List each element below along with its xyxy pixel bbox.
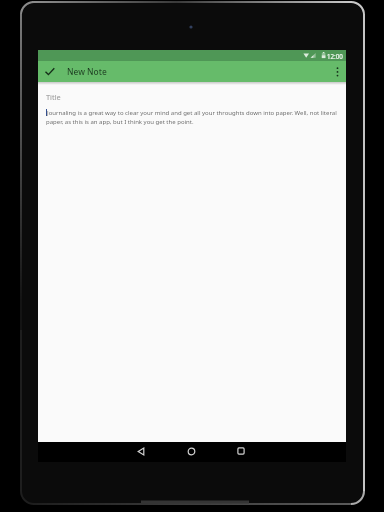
button[interactable] bbox=[227, 441, 255, 461]
button[interactable]: Title bbox=[46, 92, 340, 102]
button[interactable] bbox=[329, 61, 346, 82]
staticText: Journaling is a great way to clear your … bbox=[47, 109, 337, 117]
button[interactable] bbox=[127, 441, 155, 461]
staticText: paper, as this is an app, but I think yo… bbox=[46, 118, 194, 126]
button[interactable] bbox=[177, 441, 205, 461]
staticText: Title bbox=[46, 92, 61, 102]
button[interactable]: Journaling is a great way to clear your … bbox=[46, 109, 340, 126]
button[interactable] bbox=[38, 61, 62, 82]
staticText: New Note bbox=[67, 66, 107, 77]
staticText: 12:00 bbox=[327, 52, 343, 60]
